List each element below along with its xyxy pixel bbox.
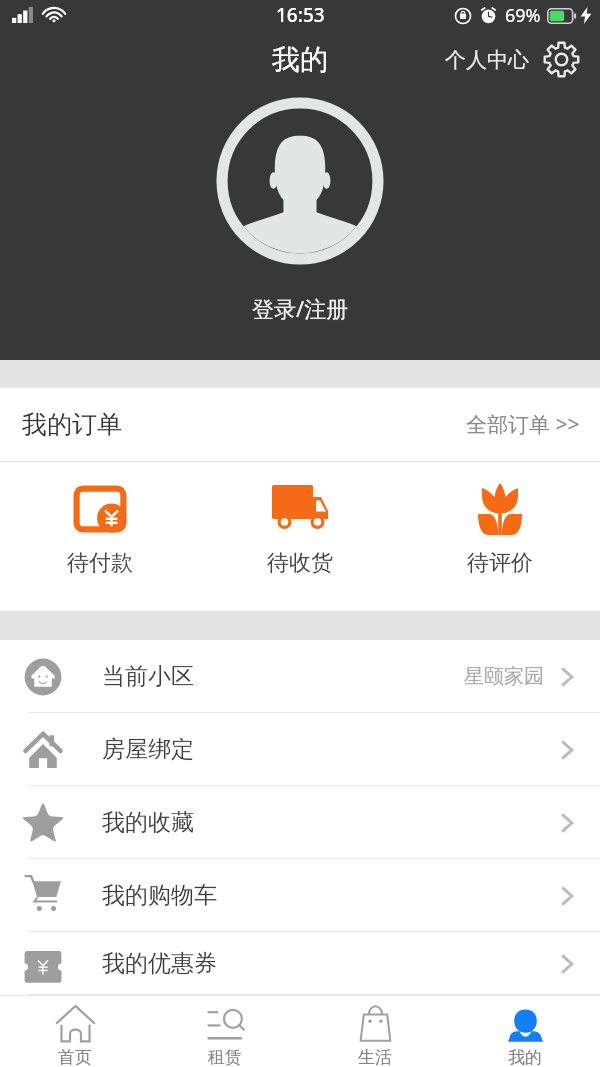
button[interactable]: 个人中心 bbox=[445, 47, 529, 73]
staticText: 我的 bbox=[508, 1047, 542, 1067]
button[interactable]: 待付款 bbox=[0, 462, 200, 611]
staticText: 当前小区 bbox=[102, 662, 194, 691]
staticText: 我的优惠券 bbox=[102, 949, 217, 978]
button[interactable]: 租赁 bbox=[150, 995, 300, 1067]
staticText: 房屋绑定 bbox=[102, 735, 194, 764]
staticText: 我的购物车 bbox=[102, 881, 217, 910]
staticText: 我的订单 bbox=[22, 409, 122, 440]
staticText: 租赁 bbox=[208, 1047, 242, 1067]
staticText: 待收货 bbox=[267, 549, 333, 577]
button[interactable]: Avatar bbox=[213, 94, 387, 268]
button[interactable]: 房屋绑定 bbox=[0, 713, 600, 786]
staticText: 待付款 bbox=[67, 549, 133, 577]
staticText: 全部订单 >> bbox=[466, 410, 580, 439]
staticText: 我的收藏 bbox=[102, 808, 194, 837]
staticText: 首页 bbox=[58, 1047, 92, 1067]
button[interactable]: 首页 bbox=[0, 995, 150, 1067]
button[interactable]: 登录/注册 bbox=[252, 293, 349, 323]
button[interactable]: 当前小区 bbox=[0, 640, 600, 713]
staticText: 我的 bbox=[272, 42, 328, 77]
button[interactable]: 我的收藏 bbox=[0, 786, 600, 859]
staticText: 待评价 bbox=[467, 549, 533, 577]
button[interactable]: 待收货 bbox=[200, 462, 400, 611]
button[interactable]: 我的购物车 bbox=[0, 859, 600, 932]
button[interactable]: Settings bbox=[543, 41, 580, 78]
button[interactable]: 待评价 bbox=[400, 462, 600, 611]
button[interactable]: 我的优惠券 bbox=[0, 932, 600, 995]
button[interactable]: 生活 bbox=[300, 995, 450, 1067]
button[interactable]: 我的订单 bbox=[0, 388, 600, 461]
staticText: 16:53 bbox=[276, 2, 325, 28]
staticText: 生活 bbox=[358, 1047, 392, 1067]
staticText: 69% bbox=[505, 3, 541, 28]
button[interactable]: 我的 bbox=[450, 995, 600, 1067]
staticText: 星颐家园 bbox=[464, 664, 544, 689]
